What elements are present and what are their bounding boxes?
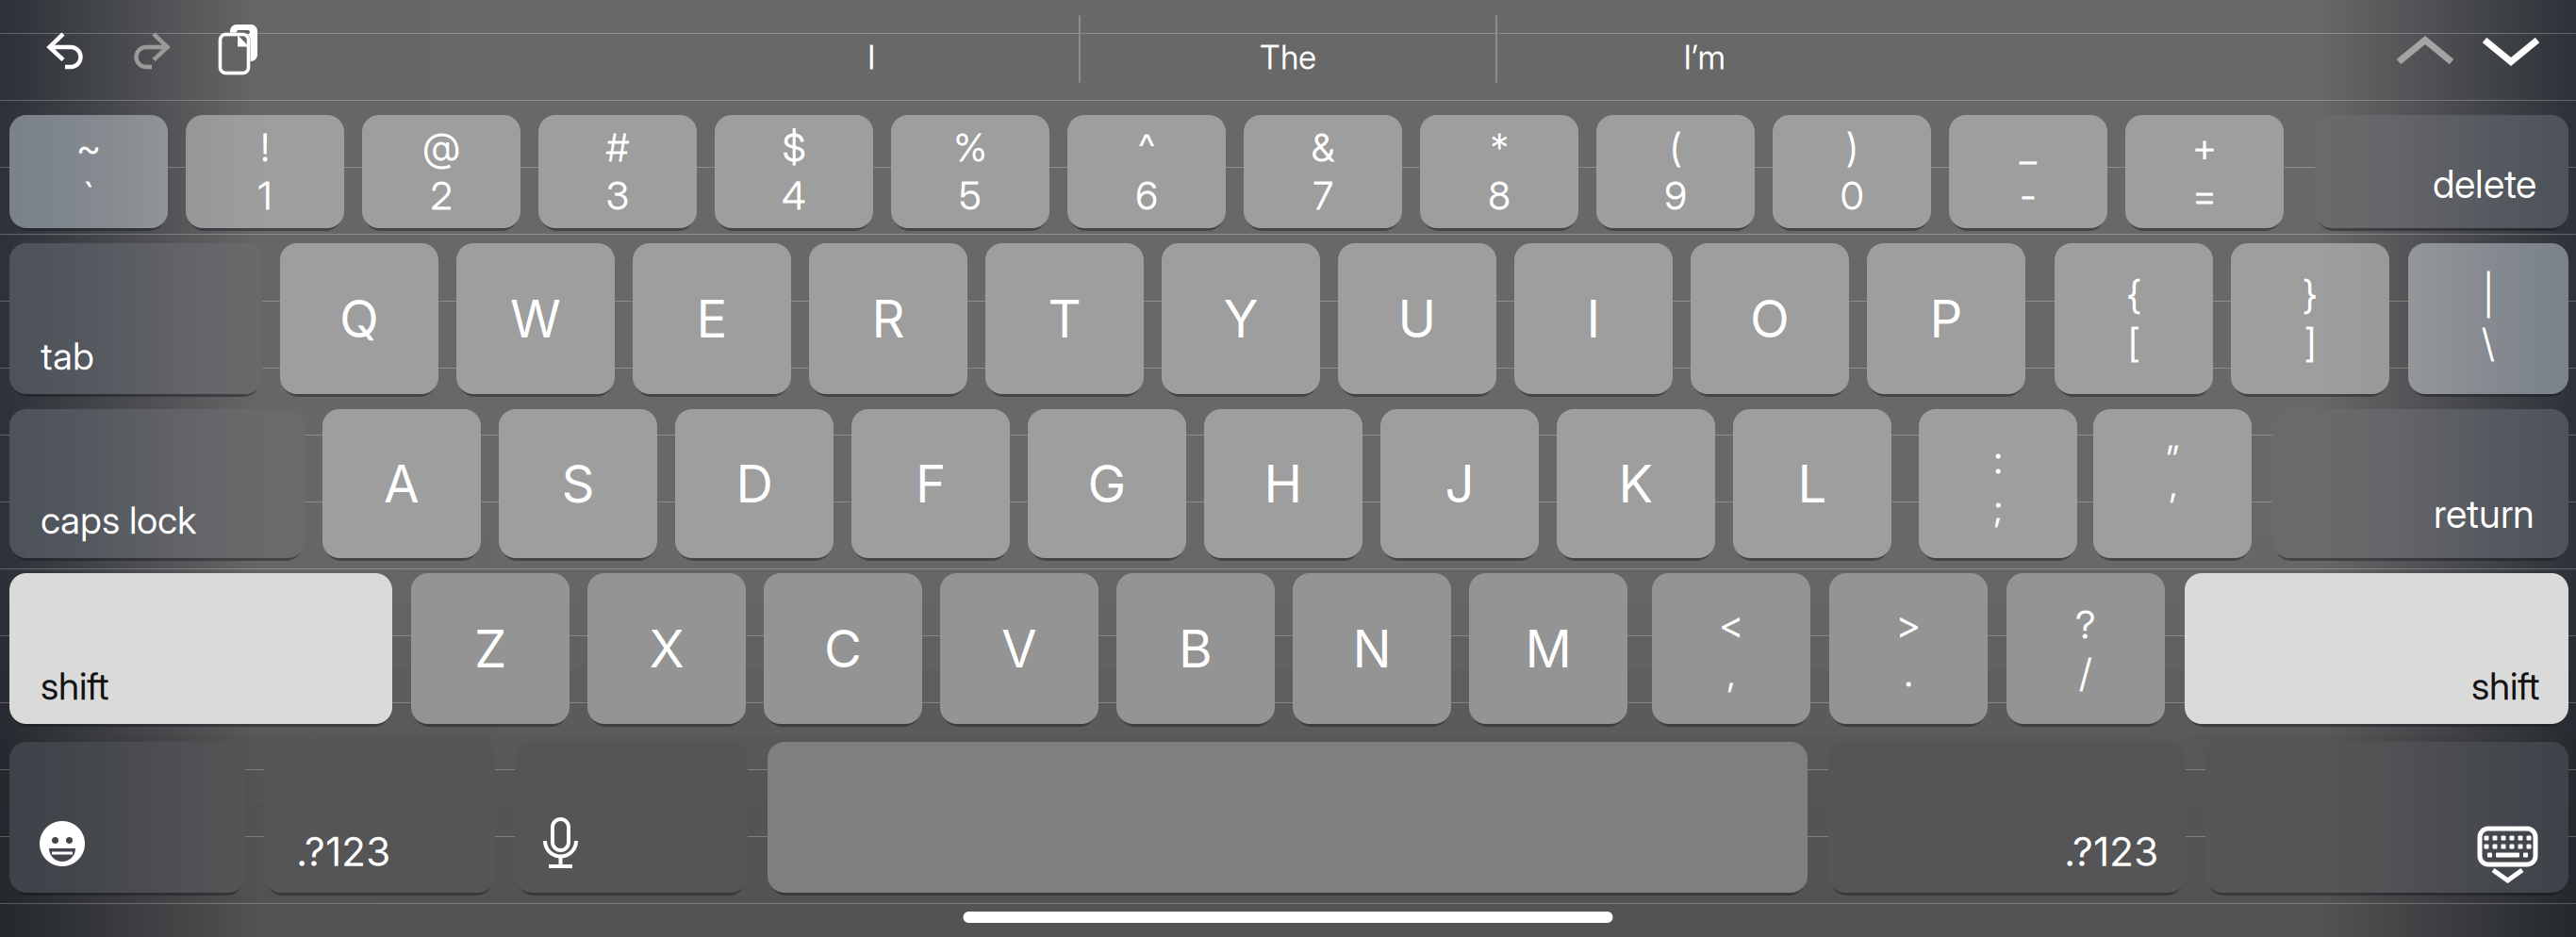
button[interactable]: } [2231, 243, 2389, 394]
staticText: 1 [258, 172, 272, 219]
staticText: T [1048, 287, 1081, 350]
button[interactable]: _ [1949, 115, 2107, 228]
button[interactable]: K [1557, 409, 1715, 558]
button[interactable]: .?123 [1828, 742, 2186, 893]
button[interactable]: shift [9, 573, 392, 724]
button[interactable]: # [538, 115, 697, 228]
staticText: 2 [430, 172, 452, 219]
button[interactable]: V [940, 573, 1098, 724]
button[interactable]: @ [362, 115, 520, 228]
button[interactable]: S [499, 409, 657, 558]
staticText: E [696, 287, 727, 350]
button[interactable]: I [1514, 243, 1673, 394]
staticText: N [1353, 617, 1391, 680]
staticText: A [384, 452, 420, 515]
button[interactable]: > [1829, 573, 1988, 724]
button[interactable]: A [322, 409, 481, 558]
button[interactable]: H [1204, 409, 1362, 558]
button[interactable]: ” [2093, 409, 2252, 558]
button[interactable]: < [1652, 573, 1810, 724]
staticText: G [1088, 452, 1126, 515]
button[interactable]: shift [2185, 573, 2568, 724]
button[interactable]: * [1420, 115, 1578, 228]
button[interactable]: L [1733, 409, 1891, 558]
staticText: ^ [1138, 124, 1155, 171]
button[interactable] [2205, 742, 2568, 893]
button[interactable]: ) [1773, 115, 1931, 228]
button[interactable]: Undo [48, 33, 84, 69]
button[interactable]: B [1116, 573, 1275, 724]
staticText: | [2483, 271, 2494, 318]
button[interactable]: Next field [2481, 35, 2541, 66]
button[interactable]: & [1244, 115, 1402, 228]
button[interactable]: Z [411, 573, 570, 724]
staticText: $ [782, 124, 806, 171]
staticText: V [1001, 617, 1037, 680]
button[interactable]: T [985, 243, 1144, 394]
button[interactable]: O [1691, 243, 1849, 394]
button[interactable]: Y [1162, 243, 1320, 394]
button[interactable]: D [675, 409, 834, 558]
button[interactable]: C [764, 573, 922, 724]
button[interactable]: Paste [220, 25, 257, 74]
staticText: U [1398, 287, 1437, 350]
staticText: [ [2128, 319, 2139, 366]
button[interactable]: $ [715, 115, 873, 228]
button[interactable]: R [809, 243, 967, 394]
button[interactable]: The [1081, 0, 1495, 115]
staticText: . [1904, 649, 1913, 696]
staticText: + [2192, 124, 2217, 171]
staticText: # [606, 124, 629, 171]
staticText: Q [339, 287, 379, 350]
button[interactable]: ( [1596, 115, 1755, 228]
staticText: ~ [76, 124, 101, 171]
button[interactable]: W [456, 243, 615, 394]
button[interactable] [9, 742, 245, 893]
button[interactable]: tab [9, 243, 262, 394]
button[interactable]: ^ [1067, 115, 1226, 228]
staticText: 5 [959, 172, 982, 219]
button[interactable]: : [1919, 409, 2077, 558]
button[interactable]: { [2055, 243, 2213, 394]
button[interactable]: delete [2315, 115, 2568, 228]
button[interactable]: F [851, 409, 1010, 558]
button[interactable]: Previous field [2395, 35, 2455, 66]
button[interactable]: % [891, 115, 1049, 228]
staticText: I [1586, 287, 1601, 350]
button[interactable]: U [1338, 243, 1496, 394]
button[interactable]: + [2125, 115, 2284, 228]
button[interactable]: Q [280, 243, 438, 394]
button[interactable]: N [1293, 573, 1451, 724]
button[interactable]: return [2272, 409, 2568, 558]
staticText: 9 [1664, 172, 1687, 219]
staticText: ? [2075, 601, 2096, 648]
staticText: 3 [606, 172, 629, 219]
button[interactable]: Redo [133, 33, 169, 69]
staticText: & [1311, 124, 1335, 171]
staticText: J [1445, 452, 1474, 515]
button[interactable] [515, 742, 748, 893]
staticText: * [1490, 124, 1508, 171]
button[interactable]: M [1469, 573, 1627, 724]
button[interactable]: ? [2006, 573, 2165, 724]
staticText: tab [41, 333, 94, 379]
button[interactable]: I [664, 0, 1079, 115]
button[interactable]: caps lock [9, 409, 305, 558]
staticText: 4 [782, 172, 806, 219]
button[interactable]: G [1028, 409, 1186, 558]
staticText: - [2020, 172, 2037, 219]
button[interactable]: | [2408, 243, 2568, 394]
button[interactable]: .?123 [264, 742, 495, 893]
staticText: Y [1223, 287, 1258, 350]
button[interactable]: ~ [9, 115, 168, 228]
button[interactable]: X [587, 573, 746, 724]
button[interactable]: E [633, 243, 791, 394]
button[interactable]: P [1867, 243, 2025, 394]
staticText: shift [41, 663, 109, 709]
button[interactable]: J [1380, 409, 1539, 558]
staticText: ] [2304, 319, 2316, 366]
staticText: , [1727, 649, 1735, 696]
button[interactable]: ! [186, 115, 344, 228]
button[interactable]: I’m [1497, 0, 1912, 115]
